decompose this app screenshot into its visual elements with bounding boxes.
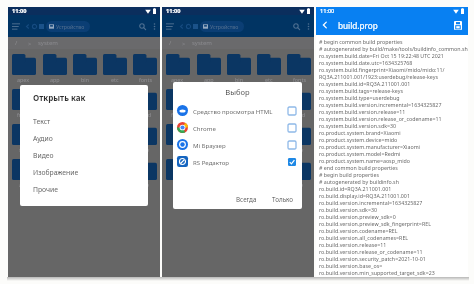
staticText: ro.system.build.fingerprint=Xiaomi/mido/… [319, 66, 445, 73]
button[interactable]: Mi Браузер [173, 136, 302, 153]
button[interactable]: Аудио [20, 130, 148, 147]
staticText: 11:00 [12, 7, 27, 15]
button[interactable]: More options [303, 21, 314, 32]
staticText: ro.system.build.tags=release-keys [319, 87, 403, 94]
button[interactable]: RS Редактор [173, 153, 302, 170]
staticText: ro.system.build.date=Fri Oct 15 19:22:48… [319, 52, 444, 59]
staticText: ro.system.build.type=userdebug [319, 94, 400, 101]
staticText: apex [17, 76, 30, 83]
staticText: prod [293, 111, 306, 118]
staticText: 11:00 [320, 7, 335, 15]
staticText: apex [171, 76, 184, 83]
staticText: ro.product.system.manufacturer=Xiaomi [319, 143, 420, 150]
staticText: eee [140, 181, 150, 188]
staticText: ro.build.id=RQ3A.211001.001 [319, 185, 392, 192]
button[interactable]: More options [149, 21, 160, 32]
staticText: fram [17, 111, 30, 118]
staticText: Прочие [33, 185, 59, 194]
staticText: / [169, 39, 172, 47]
staticText: Аудио [33, 134, 53, 143]
button[interactable]: Прочие [20, 181, 148, 198]
button[interactable]: Search [290, 20, 303, 33]
button[interactable]: Всегда [232, 193, 261, 206]
staticText: Всегда [236, 195, 257, 204]
button[interactable]: Видео [20, 147, 148, 164]
staticText: # autogenerated by buildinfo.sh [319, 178, 399, 185]
staticText: med [263, 111, 275, 118]
button[interactable]: Up [185, 23, 192, 30]
staticText: # begin build properties [319, 171, 379, 178]
staticText: ro.system.build.id=RQ3A.211001.001 [319, 80, 411, 87]
staticText: Текст [33, 117, 51, 126]
staticText: RQ3A.211001.001/1923:userdebug/release-k… [319, 73, 438, 80]
staticText: Mi Браузер [193, 141, 288, 149]
button[interactable]: Menu [163, 19, 177, 33]
staticText: Chrome [193, 124, 288, 132]
staticText: ro.product.system.brand=Xiaomi [319, 129, 401, 136]
staticText: system [38, 39, 58, 47]
staticText: ro.build.version.release_or_codename=11 [319, 248, 423, 255]
staticText: ro.build.version.security_patch=2021-10-… [319, 255, 426, 262]
staticText: ro.system.build.version.release=11 [319, 108, 406, 115]
staticText: RS Редактор [193, 158, 288, 166]
button[interactable]: Устройство [200, 21, 244, 32]
button[interactable]: Up [31, 23, 38, 30]
staticText: build.prop [338, 20, 378, 31]
button[interactable]: Средство просмотра HTML [173, 102, 302, 119]
staticText: app [50, 76, 60, 83]
staticText: ro.build.version.codename=REL [319, 227, 398, 234]
button[interactable]: Устройство [46, 21, 90, 32]
button[interactable]: Search [136, 20, 149, 33]
staticText: lib [205, 111, 212, 118]
staticText: bin [235, 76, 244, 83]
staticText: # end common build properties [319, 164, 398, 171]
button[interactable]: Save [452, 19, 464, 31]
staticText: ro.product.system.model=Redmi [319, 150, 401, 157]
staticText: usr [204, 146, 213, 153]
staticText: ro.product.system.name=aosp_mido [319, 157, 411, 164]
staticText: ro.system.build.version.incremental=1634… [319, 101, 442, 108]
staticText: ro.system.build.version.sdk=30 [319, 122, 397, 129]
staticText: Открыть как [33, 92, 86, 103]
button[interactable]: Menu [9, 19, 23, 33]
staticText: Средство просмотра HTML [193, 107, 288, 115]
staticText: ro.system.build.version.release_or_coden… [319, 115, 442, 122]
button[interactable]: Изображение [20, 164, 148, 181]
button[interactable]: Back [318, 18, 332, 32]
staticText: bin [81, 76, 90, 83]
staticText: system [192, 39, 212, 47]
staticText: ro.build.version.all_codenames=REL [319, 234, 409, 241]
staticText: # begin common build properties [319, 38, 403, 45]
staticText: 11:00 [166, 7, 181, 15]
staticText: fonts [293, 76, 306, 83]
button[interactable]: Back [178, 23, 185, 30]
staticText: > [182, 40, 186, 47]
staticText: fram [171, 111, 184, 118]
staticText: Устройство [210, 23, 239, 30]
button[interactable]: Back [24, 23, 31, 30]
button[interactable]: Текст [20, 113, 148, 130]
staticText: ro.build.version.sdk=30 [319, 206, 378, 213]
staticText: syst [19, 146, 29, 153]
button[interactable]: Storage [38, 23, 45, 30]
staticText: Видео [33, 151, 54, 160]
staticText: ro.build.version.preview_sdk=0 [319, 213, 396, 220]
staticText: app [204, 76, 214, 83]
staticText: prod [139, 111, 152, 118]
staticText: Только [272, 195, 294, 204]
button[interactable]: Chrome [173, 119, 302, 136]
staticText: fonts [139, 76, 152, 83]
staticText: ro.product.system.device=mido [319, 136, 398, 143]
button[interactable]: Только [268, 193, 298, 206]
button[interactable]: Storage [192, 23, 199, 30]
